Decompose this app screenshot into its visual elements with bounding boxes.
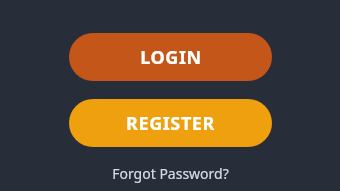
staticText: REGISTER	[126, 111, 215, 136]
staticText: LOGIN	[140, 45, 202, 70]
button[interactable]: REGISTER	[69, 99, 272, 147]
staticText: Forgot Password?	[112, 164, 229, 183]
button[interactable]: Forgot Password?	[104, 160, 237, 187]
button[interactable]: LOGIN	[69, 33, 272, 81]
